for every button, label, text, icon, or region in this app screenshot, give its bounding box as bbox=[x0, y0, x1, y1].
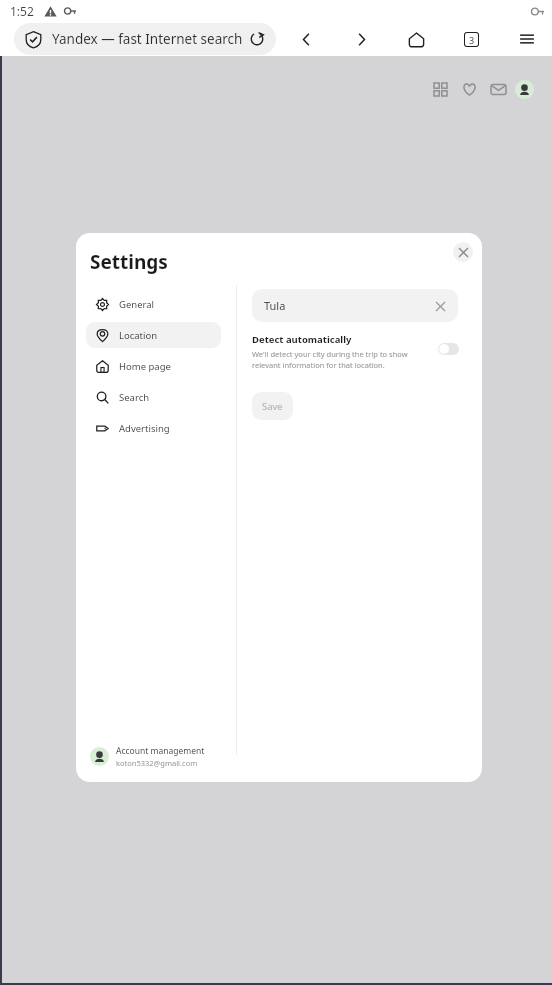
staticText: Tula bbox=[264, 298, 432, 313]
staticText: Home page bbox=[119, 360, 171, 373]
staticText: We'll detect your city during the trip t… bbox=[252, 349, 417, 370]
button[interactable]: Clear city bbox=[432, 298, 448, 314]
button[interactable]: Menu bbox=[512, 24, 542, 54]
staticText: koton5332@gmail.com bbox=[116, 758, 198, 768]
button[interactable]: Account management bbox=[86, 740, 226, 772]
other: Reload bbox=[249, 31, 265, 47]
button[interactable]: Home page bbox=[86, 353, 221, 379]
staticText: Yandex — fast Internet search bbox=[52, 30, 245, 48]
button[interactable]: Mail bbox=[485, 76, 511, 102]
button[interactable]: Home bbox=[401, 24, 431, 54]
button[interactable]: Save bbox=[252, 392, 293, 420]
staticText: Advertising bbox=[119, 422, 170, 435]
staticText: Search bbox=[119, 391, 150, 404]
button[interactable]: General bbox=[86, 291, 221, 317]
button[interactable]: Account bbox=[515, 80, 534, 99]
button[interactable]: Advertising bbox=[86, 415, 221, 441]
staticText: Settings bbox=[90, 249, 168, 275]
staticText: 3 bbox=[469, 34, 475, 46]
staticText: Location bbox=[119, 329, 158, 342]
button[interactable]: Tabs bbox=[456, 24, 486, 54]
button[interactable]: Search bbox=[86, 384, 221, 410]
staticText: General bbox=[119, 298, 155, 311]
button[interactable]: Close bbox=[453, 242, 473, 262]
button[interactable]: Detect automatically toggle bbox=[438, 343, 459, 355]
staticText: Save bbox=[262, 400, 283, 413]
button[interactable]: Forward bbox=[346, 24, 376, 54]
button[interactable]: Site security bbox=[14, 23, 276, 55]
other: Site security bbox=[25, 31, 42, 48]
button[interactable]: Back bbox=[291, 24, 321, 54]
staticText: 1:52 bbox=[10, 3, 34, 19]
button[interactable]: Services bbox=[427, 76, 453, 102]
button[interactable]: Location bbox=[86, 322, 221, 348]
staticText: Account management bbox=[116, 745, 205, 757]
staticText: Detect automatically bbox=[252, 333, 352, 346]
button[interactable]: Tula bbox=[252, 289, 458, 322]
button[interactable]: Favorites bbox=[456, 76, 482, 102]
